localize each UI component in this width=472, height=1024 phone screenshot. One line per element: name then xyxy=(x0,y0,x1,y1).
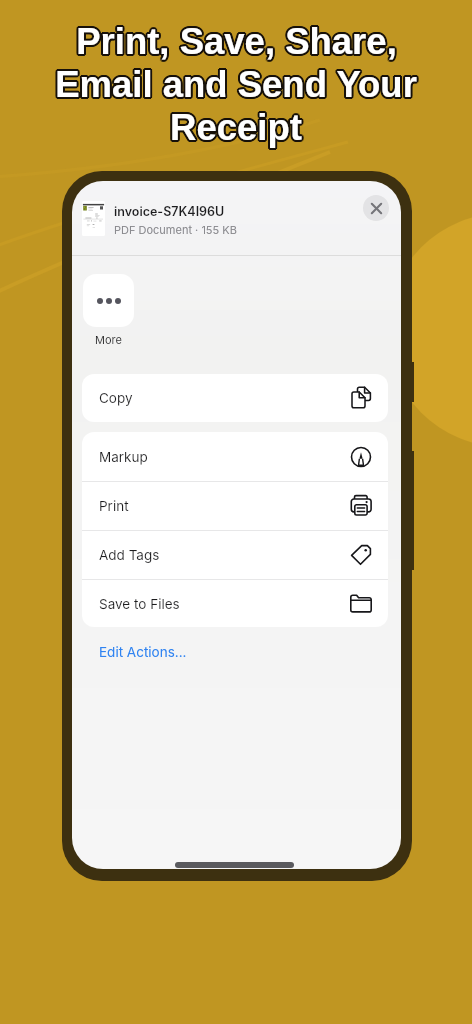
staticText: Email and Send Your xyxy=(55,64,417,105)
staticText: Print, Save, Share, xyxy=(74,22,395,63)
staticText: PDF Document · 155 KB xyxy=(114,223,237,236)
other: Add Tags xyxy=(349,543,373,567)
staticText: More xyxy=(95,333,122,346)
staticText: Email and Send Your xyxy=(53,64,415,105)
staticText: Print, Save, Share, xyxy=(77,23,398,64)
staticText: Email and Send Your xyxy=(55,62,417,103)
staticText: Print, Save, Share, xyxy=(75,23,396,64)
button[interactable] xyxy=(83,274,134,327)
other: Save to Files xyxy=(349,592,373,616)
staticText: invoice-S7K4I96U xyxy=(114,204,225,219)
staticText: Email and Send Your xyxy=(56,66,418,107)
staticText: Print, Save, Share, xyxy=(78,20,399,61)
staticText: Email and Send Your xyxy=(55,62,417,103)
button[interactable]: Print xyxy=(82,482,388,530)
staticText: Receipt xyxy=(169,105,301,146)
button[interactable]: Close xyxy=(363,195,389,221)
staticText: Print, Save, Share, xyxy=(75,19,396,60)
staticText: Email and Send Your xyxy=(53,63,415,104)
staticText: Receipt xyxy=(171,105,303,146)
staticText: Email and Send Your xyxy=(55,66,417,107)
staticText: Print, Save, Share, xyxy=(76,19,397,60)
staticText: Email and Send Your xyxy=(56,62,418,103)
button[interactable]: Save to Files xyxy=(82,580,388,627)
staticText: Email and Send Your xyxy=(55,66,417,107)
staticText: Receipt xyxy=(170,107,302,148)
staticText: Receipt xyxy=(172,108,304,149)
staticText: Print, Save, Share, xyxy=(74,21,395,62)
staticText: Copy xyxy=(99,390,133,406)
staticText: Add Tags xyxy=(99,547,160,563)
staticText: Receipt xyxy=(170,105,302,146)
staticText: Receipt xyxy=(170,109,302,150)
staticText: Receipt xyxy=(170,109,302,150)
staticText: Email and Send Your xyxy=(54,62,416,103)
other: Markup xyxy=(349,445,373,469)
other: Copy xyxy=(349,386,373,410)
staticText: Email and Send Your xyxy=(57,63,419,104)
button[interactable]: Copy xyxy=(82,374,388,422)
staticText: Print, Save, Share, xyxy=(76,19,397,60)
staticText: Print, Save, Share, xyxy=(74,20,395,61)
staticText: Email and Send Your xyxy=(54,66,416,107)
staticText: Email and Send Your xyxy=(57,64,419,105)
staticText: Markup xyxy=(99,449,148,465)
staticText: Receipt xyxy=(172,106,304,147)
staticText: Save to Files xyxy=(99,596,180,612)
button[interactable]: Edit Actions... xyxy=(99,644,187,660)
staticText: Receipt xyxy=(168,108,300,149)
other: Print xyxy=(349,494,373,518)
staticText: Email and Send Your xyxy=(57,65,419,106)
staticText: Receipt xyxy=(168,106,300,147)
staticText: Receipt xyxy=(168,107,300,148)
staticText: Print, Save, Share, xyxy=(76,23,397,64)
staticText: Print, Save, Share, xyxy=(76,21,397,62)
staticText: Receipt xyxy=(169,109,301,150)
staticText: Print, Save, Share, xyxy=(76,23,397,64)
staticText: Receipt xyxy=(170,105,302,146)
staticText: Receipt xyxy=(172,107,304,148)
staticText: Print xyxy=(99,498,129,514)
staticText: Print, Save, Share, xyxy=(78,21,399,62)
button[interactable]: Add Tags xyxy=(82,531,388,579)
staticText: Print, Save, Share, xyxy=(77,19,398,60)
button[interactable]: Markup xyxy=(82,432,388,481)
staticText: Email and Send Your xyxy=(53,65,415,106)
staticText: Receipt xyxy=(171,109,303,150)
staticText: Print, Save, Share, xyxy=(78,22,399,63)
